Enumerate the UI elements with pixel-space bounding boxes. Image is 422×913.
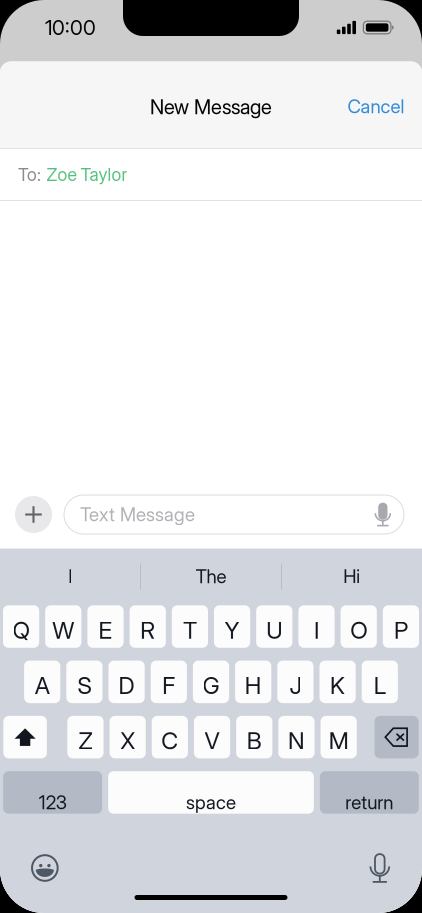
staticText: K <box>330 671 345 699</box>
staticText: To: <box>18 164 41 185</box>
staticText: G <box>202 671 219 699</box>
staticText: P <box>394 616 408 644</box>
button[interactable]: V <box>194 716 230 758</box>
staticText: B <box>247 727 262 755</box>
staticText: L <box>374 671 386 699</box>
staticText: Z <box>78 727 92 755</box>
staticText: The <box>195 565 226 588</box>
button[interactable]: L <box>362 661 398 703</box>
button[interactable]: Cancel <box>329 84 422 129</box>
button[interactable]: R <box>130 605 166 648</box>
button[interactable]: W <box>45 605 81 648</box>
staticText: U <box>266 616 282 644</box>
staticText: 123 <box>39 791 67 814</box>
button[interactable]: space <box>108 771 314 814</box>
button[interactable]: Delete <box>374 716 419 758</box>
staticText: space <box>186 791 236 814</box>
button[interactable]: Y <box>214 605 250 648</box>
staticText: I <box>314 616 319 644</box>
staticText: R <box>140 616 155 644</box>
button[interactable]: U <box>256 605 292 648</box>
staticText: D <box>119 671 135 699</box>
staticText: W <box>52 616 74 644</box>
staticText: N <box>288 727 305 755</box>
button[interactable]: E <box>87 605 124 648</box>
staticText: Cancel <box>347 95 404 118</box>
staticText: Hi <box>343 565 360 588</box>
button[interactable]: J <box>277 661 313 703</box>
button[interactable]: Add attachment <box>15 496 52 533</box>
staticText: I <box>68 565 72 588</box>
staticText: E <box>98 616 112 644</box>
button[interactable]: G <box>193 661 229 703</box>
staticText: M <box>329 727 349 755</box>
staticText: return <box>345 791 393 814</box>
button[interactable]: T <box>172 605 208 648</box>
staticText: Y <box>225 616 240 644</box>
button[interactable]: B <box>236 716 272 758</box>
button[interactable]: Q <box>3 605 39 648</box>
button[interactable]: S <box>66 661 102 703</box>
staticText: S <box>77 671 91 699</box>
button[interactable]: M <box>320 716 357 758</box>
button[interactable]: I <box>298 605 335 648</box>
button[interactable]: X <box>109 716 146 758</box>
button[interactable]: K <box>319 661 356 703</box>
button[interactable]: A <box>24 661 60 703</box>
button[interactable]: P <box>383 605 419 648</box>
staticText: H <box>245 671 262 699</box>
button[interactable]: Shift <box>3 716 47 758</box>
button[interactable]: Dictation <box>370 853 390 883</box>
staticText: New Message <box>150 95 272 119</box>
button[interactable]: H <box>235 661 271 703</box>
staticText: Zoe Taylor <box>46 164 127 185</box>
button[interactable]: F <box>151 661 187 703</box>
button[interactable]: Hi <box>281 551 422 601</box>
staticText: 10:00 <box>45 15 96 40</box>
button[interactable]: C <box>152 716 188 758</box>
staticText: J <box>289 671 301 699</box>
button[interactable]: N <box>278 716 315 758</box>
staticText: T <box>183 616 197 644</box>
staticText: X <box>120 727 135 755</box>
button[interactable]: Emoji <box>31 854 59 882</box>
staticText: F <box>162 671 175 699</box>
staticText: Text Message <box>80 503 195 526</box>
button[interactable]: O <box>341 605 377 648</box>
staticText: O <box>350 616 367 644</box>
button[interactable]: The <box>141 551 281 601</box>
staticText: Q <box>13 616 30 644</box>
button[interactable]: D <box>108 661 145 703</box>
staticText: C <box>161 727 178 755</box>
button[interactable]: Z <box>67 716 103 758</box>
button[interactable]: 123 <box>3 771 102 814</box>
staticText: V <box>204 727 219 755</box>
staticText: A <box>35 671 50 699</box>
button[interactable]: I <box>0 551 141 601</box>
button[interactable]: return <box>320 771 419 814</box>
button[interactable]: Text Message <box>64 495 404 534</box>
